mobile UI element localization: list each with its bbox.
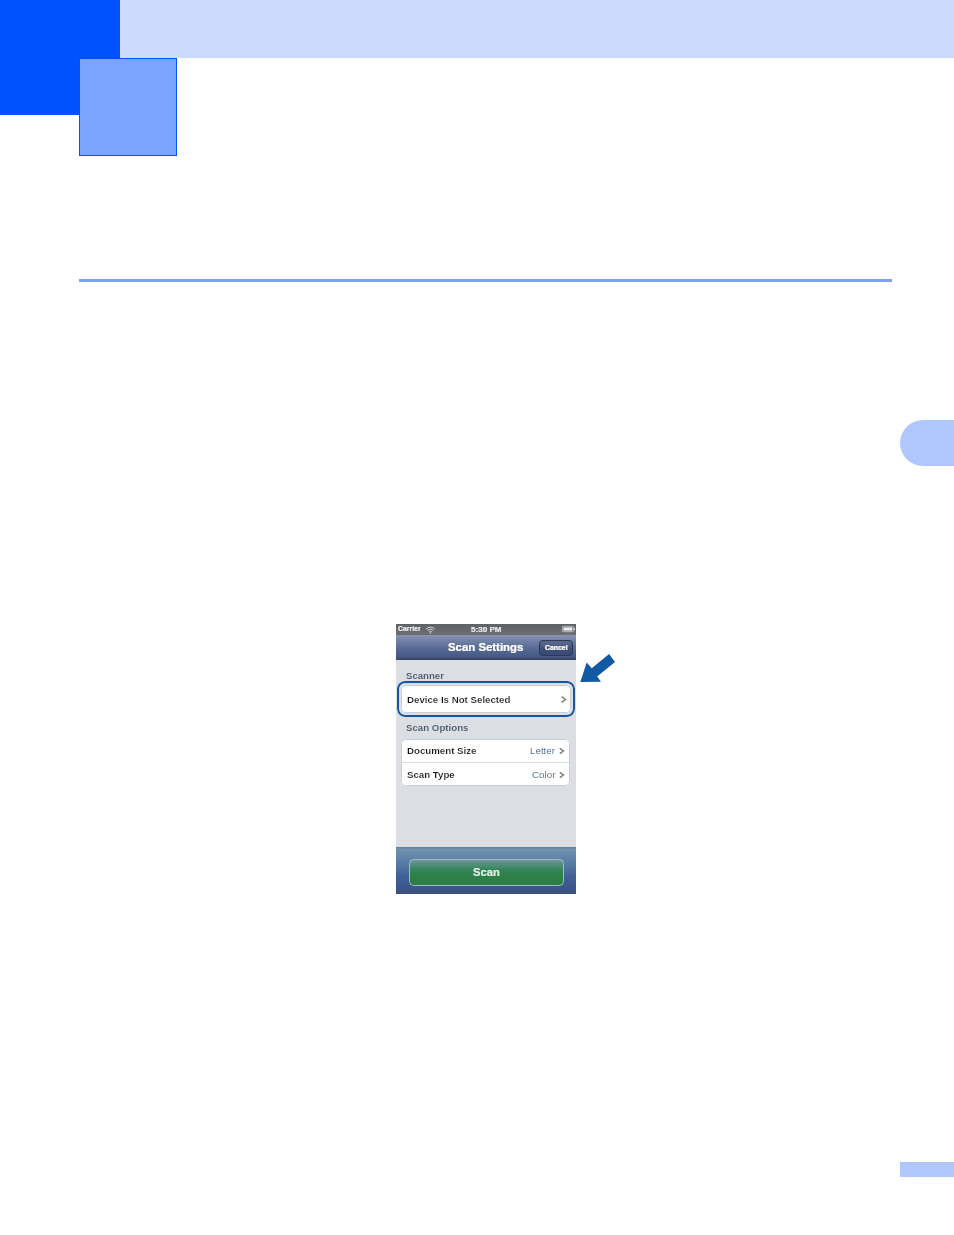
button[interactable]: Scan Type [401,763,570,786]
staticText: Scan Settings [448,641,524,654]
button[interactable]: Document Size [401,739,570,762]
staticText: Scan Type [407,769,455,780]
staticText: Color [532,769,556,780]
staticText: Scanner [406,670,444,681]
staticText: Letter [530,745,556,756]
staticText: Cancel [545,644,568,652]
button[interactable]: Device Is Not Selected [401,685,571,713]
staticText: Device Is Not Selected [407,694,511,705]
staticText: Document Size [407,745,477,756]
button[interactable]: Scan [409,859,564,886]
staticText: Carrier [398,625,421,633]
staticText: 5:30 PM [471,625,502,634]
other: Callout arrow pointing to Device Is Not … [580,654,615,682]
button[interactable]: Cancel [539,640,573,656]
staticText: Scan Options [406,722,469,733]
staticText: Scan [473,866,500,879]
